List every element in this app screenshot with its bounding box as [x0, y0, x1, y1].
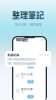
staticText: 會議紀錄 [7, 53, 19, 57]
button[interactable]: New note [40, 37, 43, 42]
staticText: 整理 [29, 65, 33, 68]
staticText: ＋ [40, 37, 43, 42]
button[interactable]: 讀書筆記 [15, 57, 43, 68]
staticText: 完成 [29, 95, 33, 98]
staticText: 讀書筆記 [21, 57, 33, 61]
button[interactable]: 旅行計畫 [15, 72, 43, 83]
staticText: 8 則 [21, 76, 24, 79]
staticText: 5 則 [21, 91, 24, 94]
staticText: 今天 14:20 [39, 53, 49, 56]
staticText: 隨手記錄．隨時整理 [14, 22, 41, 27]
button[interactable]: 購物清單 [15, 87, 43, 98]
staticText: 待辦 [29, 80, 33, 83]
staticText: 討論下季產品路線圖與資源分配 [7, 57, 35, 61]
staticText: 購物清單 [21, 87, 33, 91]
staticText: 旅行計畫 [21, 72, 33, 76]
staticText: 12 則 [21, 61, 25, 64]
staticText: 整理筆記 [12, 9, 44, 21]
staticText: 我的筆記 [16, 37, 28, 42]
staticText: 待辦：整理重點並寄出會議摘要 [7, 62, 35, 65]
